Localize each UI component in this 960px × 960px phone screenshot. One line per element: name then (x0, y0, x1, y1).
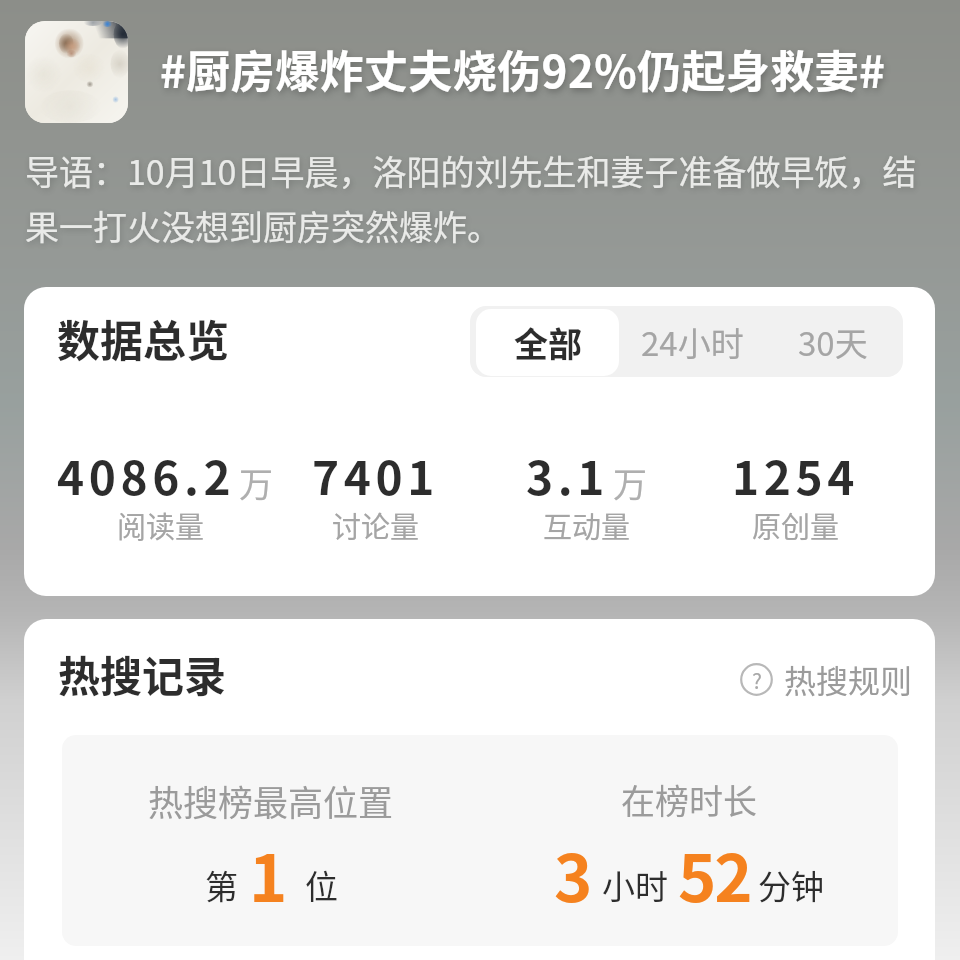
button[interactable]: 4086.2 (57, 424, 265, 554)
staticText: 阅读量 (117, 504, 205, 546)
staticText: 3.1 (526, 442, 610, 509)
staticText: 热搜规则 (784, 656, 913, 702)
staticText: 24小时 (641, 318, 744, 366)
button[interactable]: 话题配图 (25, 21, 128, 123)
button[interactable]: 24小时 (622, 306, 762, 377)
button[interactable]: 全部 (476, 309, 619, 376)
staticText: 万 (239, 458, 265, 507)
staticText: 在榜时长 (621, 775, 757, 824)
staticText: 位 (305, 861, 338, 909)
staticText: #厨房爆炸丈夫烧伤92%仍起身救妻# (160, 37, 886, 101)
other: 热搜规则说明 (740, 663, 773, 696)
staticText: 4086.2 (57, 442, 236, 509)
button[interactable]: 7401 (271, 424, 479, 554)
staticText: 3 (554, 827, 593, 921)
staticText: 7401 (312, 442, 439, 509)
staticText: 30天 (798, 318, 868, 366)
staticText: 1254 (732, 442, 859, 509)
button[interactable]: 热搜规则说明 (740, 656, 913, 702)
button[interactable]: 3.1 (482, 424, 690, 554)
button[interactable]: 1254 (691, 424, 899, 554)
staticText: 讨论量 (332, 504, 420, 546)
staticText: 互动量 (543, 504, 631, 546)
staticText: 52 (678, 827, 751, 921)
staticText: ? (752, 665, 762, 695)
staticText: 全部 (514, 318, 582, 367)
staticText: 热搜榜最高位置 (148, 775, 394, 826)
staticText: 小时 (602, 861, 668, 909)
staticText: 热搜记录 (58, 643, 227, 704)
staticText: 原创量 (752, 504, 840, 546)
staticText: 分钟 (758, 861, 824, 909)
staticText: 导语：10月10日早晨，洛阳的刘先生和妻子准备做早饭，结果一打火没想到厨房突然爆… (25, 146, 927, 250)
staticText: 第 (205, 861, 238, 909)
staticText: 万 (613, 458, 647, 507)
staticText: 数据总览 (57, 307, 229, 369)
button[interactable]: #厨房爆炸丈夫烧伤92%仍起身救妻# (155, 33, 915, 105)
staticText: 1 (249, 827, 288, 921)
button[interactable]: 30天 (762, 306, 903, 377)
